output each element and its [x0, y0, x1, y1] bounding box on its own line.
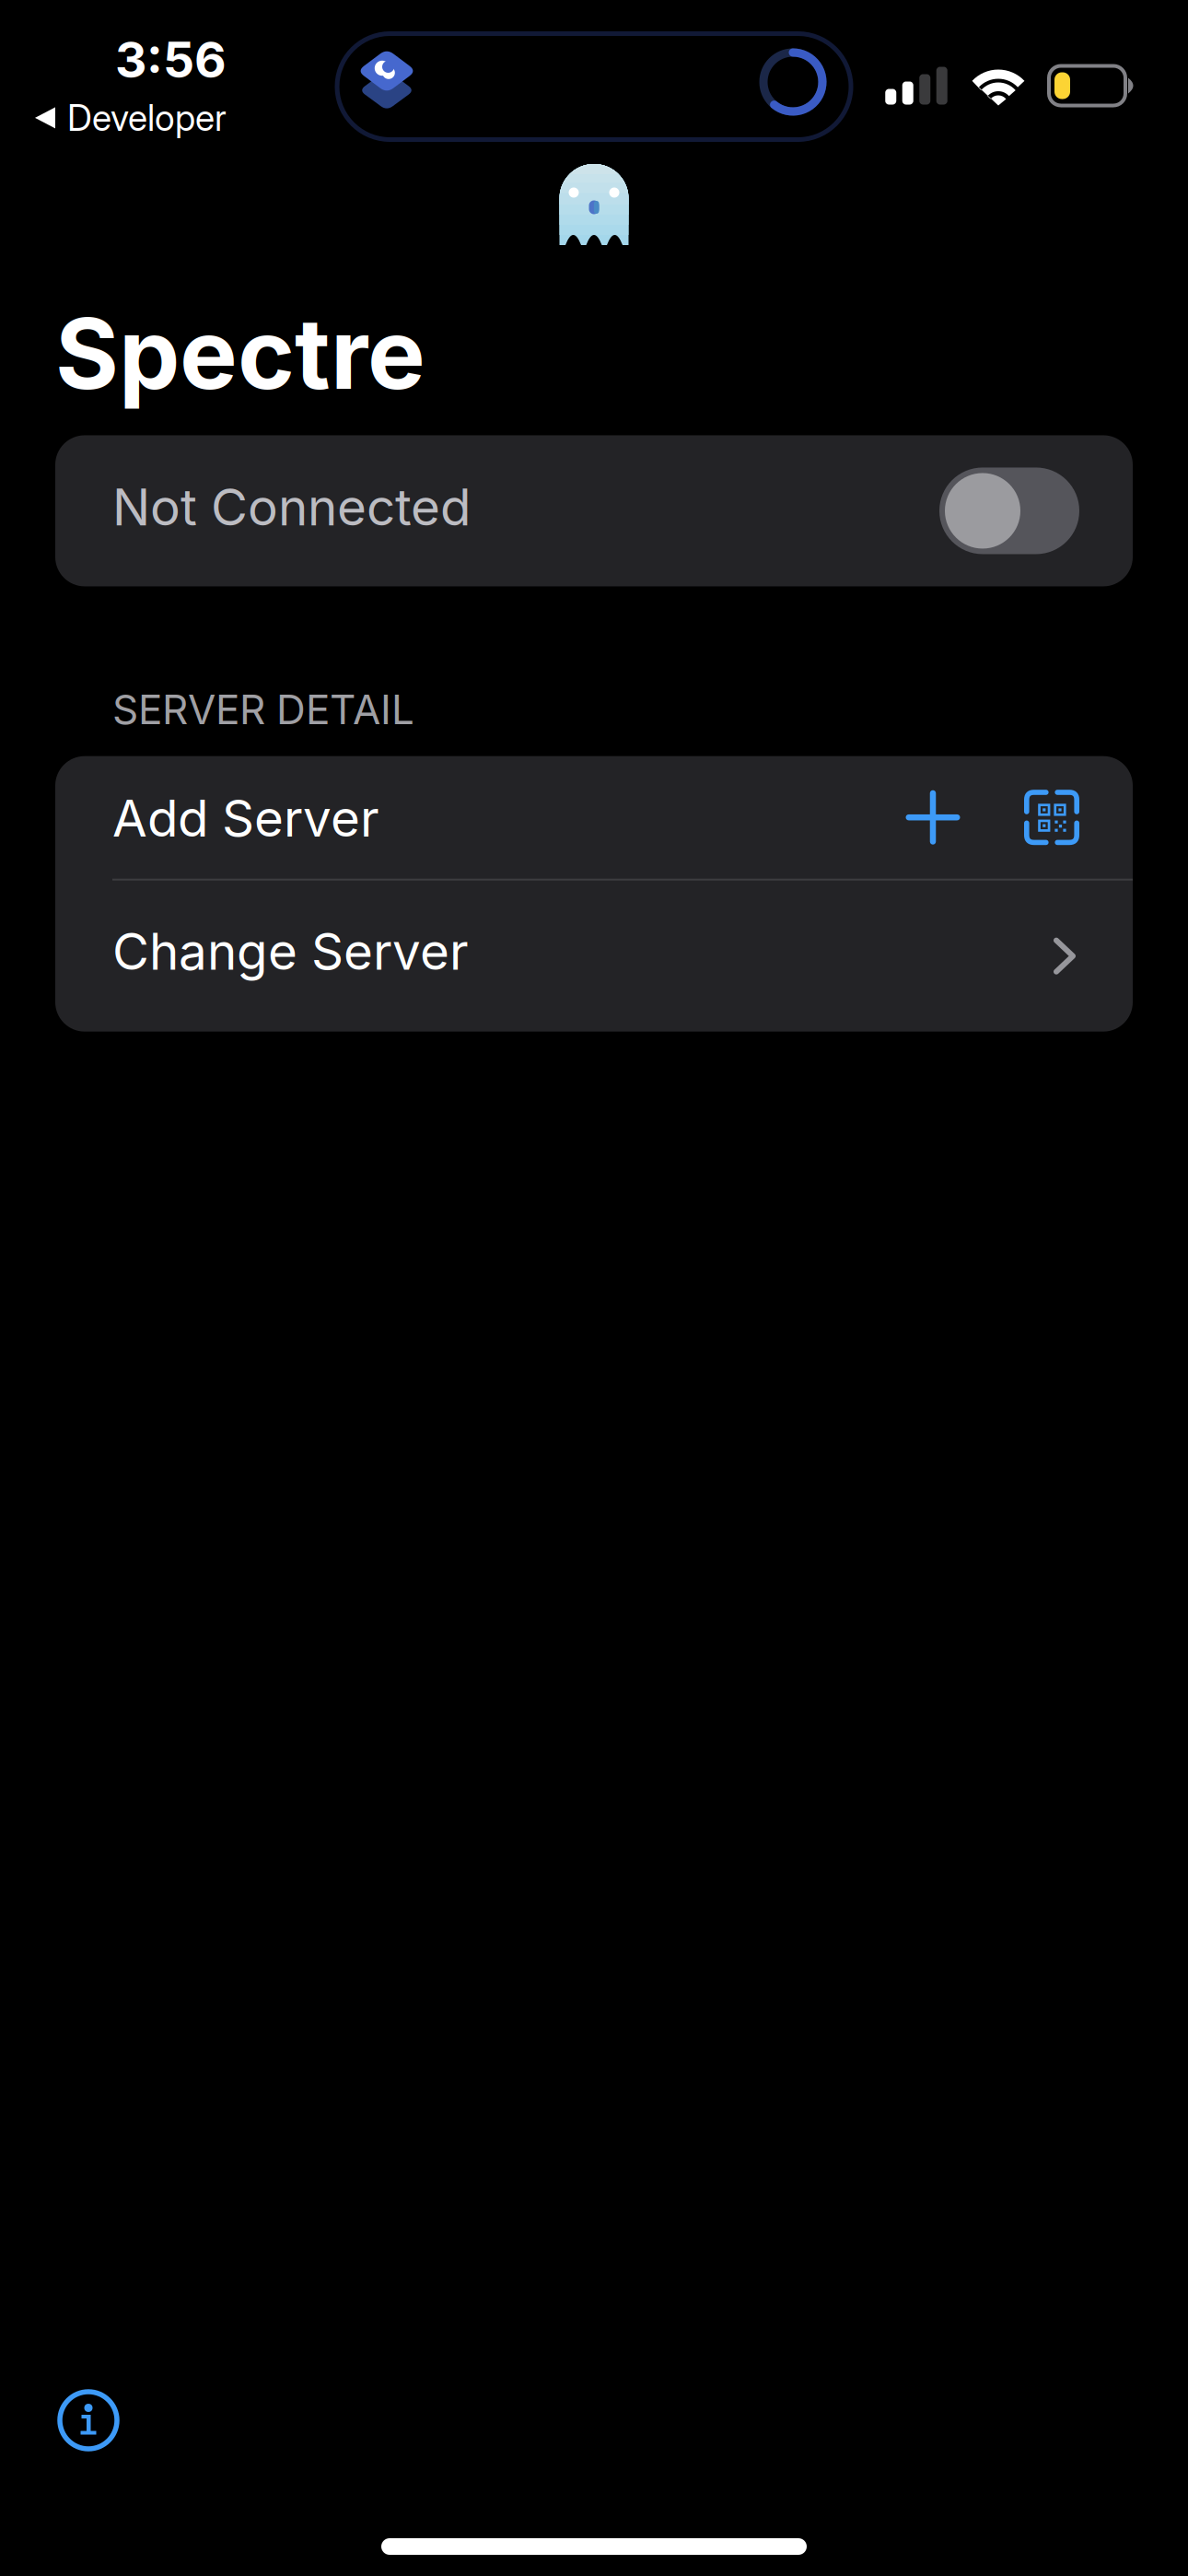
staticText: SERVER DETAIL [112, 685, 414, 734]
staticText: Change Server [112, 921, 469, 982]
staticText: Not Connected [112, 477, 471, 538]
button[interactable]: Change Server [55, 881, 1133, 1032]
staticText: Spectre [55, 295, 425, 412]
button[interactable]: Add Server [55, 756, 1133, 879]
button[interactable]: Developer [35, 96, 227, 139]
button[interactable]: Not Connected [55, 435, 1133, 586]
staticText: Developer [67, 96, 227, 139]
button[interactable]: Information [37, 2369, 140, 2472]
staticText: Add Server [112, 788, 379, 849]
staticText: 3:56 [115, 30, 227, 89]
